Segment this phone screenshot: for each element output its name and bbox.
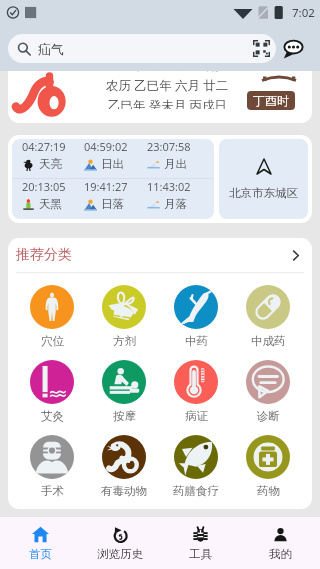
button[interactable]: Scan QR code [247, 34, 276, 63]
staticText: 推荐分类 [16, 246, 72, 264]
staticText: 中药 [185, 334, 208, 348]
staticText: 药膳食疗 [173, 484, 219, 498]
staticText: 月出 [164, 157, 187, 171]
staticText: 中成药 [251, 334, 286, 348]
button[interactable]: 方剂 [88, 273, 160, 348]
button[interactable]: 中药 [160, 273, 232, 348]
button[interactable]: 中成药 [232, 273, 304, 348]
staticText: 方剂 [113, 334, 136, 348]
staticText: 丁酉时 [253, 93, 289, 108]
staticText: 北京市东城区 [229, 186, 298, 200]
staticText: 疝气 [38, 41, 64, 57]
button[interactable]: 2025年7月16日 星期三 [8, 71, 312, 123]
staticText: 我的 [269, 547, 292, 561]
staticText: 04:59:02 [84, 139, 128, 154]
staticText: 药物 [257, 484, 280, 498]
button[interactable]: 浏览历史 [80, 517, 160, 569]
button[interactable]: 艾灸 [16, 348, 88, 423]
staticText: 日出 [101, 157, 124, 171]
button[interactable]: 推荐分类 [8, 238, 312, 272]
staticText: 手术 [41, 484, 64, 498]
staticText: 乙巳年 癸未月 丙戌日 [108, 97, 228, 109]
staticText: 2025年7月16日 星期三 [103, 71, 232, 74]
staticText: 农历 乙巳年 六月 廿二 [106, 77, 229, 94]
button[interactable]: 手术 [16, 423, 88, 498]
staticText: 7:02 [292, 5, 315, 21]
button[interactable]: 药膳食疗 [160, 423, 232, 498]
staticText: 04:27:19 [22, 139, 66, 154]
staticText: 工具 [189, 547, 212, 561]
staticText: 穴位 [41, 334, 64, 348]
staticText: 有毒动物 [101, 484, 147, 498]
staticText: 天黑 [39, 197, 62, 211]
button[interactable]: 北京市东城区 [219, 139, 308, 219]
staticText: 11:43:02 [147, 179, 191, 194]
staticText: 浏览历史 [97, 547, 143, 561]
button[interactable]: 病证 [160, 348, 232, 423]
button[interactable]: 04:27:19 [12, 139, 214, 219]
staticText: 23:07:58 [147, 139, 191, 154]
button[interactable]: 我的 [240, 517, 320, 569]
button[interactable]: 首页 [0, 517, 80, 569]
staticText: 首页 [29, 547, 52, 561]
button[interactable]: 疝气 [8, 34, 276, 63]
staticText: 按摩 [113, 409, 136, 423]
staticText: 月落 [164, 197, 187, 211]
staticText: 19:41:27 [84, 179, 128, 194]
staticText: 病证 [185, 409, 208, 423]
staticText: 日落 [101, 197, 124, 211]
button[interactable]: 诊断 [232, 348, 304, 423]
button[interactable]: 有毒动物 [88, 423, 160, 498]
staticText: 天亮 [39, 157, 62, 171]
button[interactable]: 药物 [232, 423, 304, 498]
staticText: 诊断 [257, 409, 280, 423]
button[interactable]: 工具 [160, 517, 240, 569]
button[interactable]: Messages [276, 31, 310, 65]
staticText: 20:13:05 [22, 179, 66, 194]
staticText: 艾灸 [41, 409, 64, 423]
button[interactable]: 穴位 [16, 273, 88, 348]
button[interactable]: 按摩 [88, 348, 160, 423]
